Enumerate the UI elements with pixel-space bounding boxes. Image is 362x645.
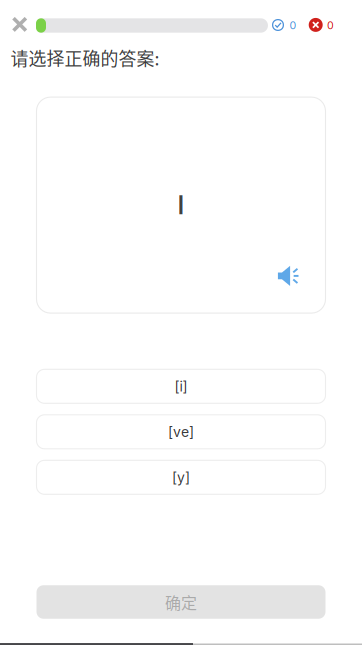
- staticText: [ve]: [168, 423, 194, 440]
- button[interactable]: [ve]: [36, 415, 325, 449]
- button[interactable]: [y]: [36, 460, 325, 494]
- staticText: 0: [289, 19, 296, 32]
- staticText: 请选择正确的答案:: [10, 45, 159, 71]
- staticText: I: [177, 190, 184, 220]
- button[interactable]: Play pronunciation: [277, 265, 298, 286]
- staticText: [i]: [174, 378, 187, 395]
- staticText: 0: [327, 19, 334, 32]
- staticText: 确定: [165, 590, 197, 614]
- staticText: [y]: [172, 469, 190, 486]
- button[interactable]: Close: [3, 7, 37, 41]
- button[interactable]: 确定: [36, 585, 325, 619]
- button[interactable]: [i]: [36, 369, 325, 403]
